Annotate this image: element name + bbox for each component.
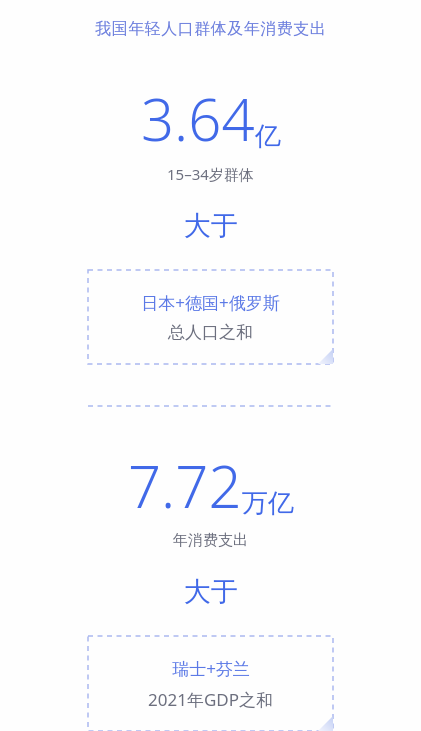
button[interactable]: 大于 — [0, 209, 421, 243]
button[interactable]: 日本+德国+俄罗斯 — [88, 270, 333, 364]
staticText: 总人口之和 — [168, 322, 253, 343]
staticText: 我国年轻人口群体及年消费支出 — [95, 19, 326, 39]
staticText: 日本+德国+俄罗斯 — [141, 291, 280, 314]
staticText: 大于 — [184, 575, 238, 609]
staticText: 瑞士+芬兰 — [172, 657, 250, 680]
button[interactable]: 大于 — [0, 575, 421, 609]
staticText: 年消费支出 — [173, 531, 248, 550]
staticText: 万亿 — [242, 487, 294, 520]
staticText: 3.64 — [141, 79, 255, 158]
staticText: 大于 — [184, 209, 238, 243]
staticText: 15–34岁群体 — [167, 164, 254, 184]
button[interactable]: 瑞士+芬兰 — [88, 636, 333, 731]
staticText: 亿 — [255, 120, 281, 153]
staticText: 7.72 — [128, 446, 242, 525]
staticText: 2021年GDP之和 — [148, 688, 273, 711]
button[interactable]: 我国年轻人口群体及年消费支出 — [0, 19, 421, 39]
